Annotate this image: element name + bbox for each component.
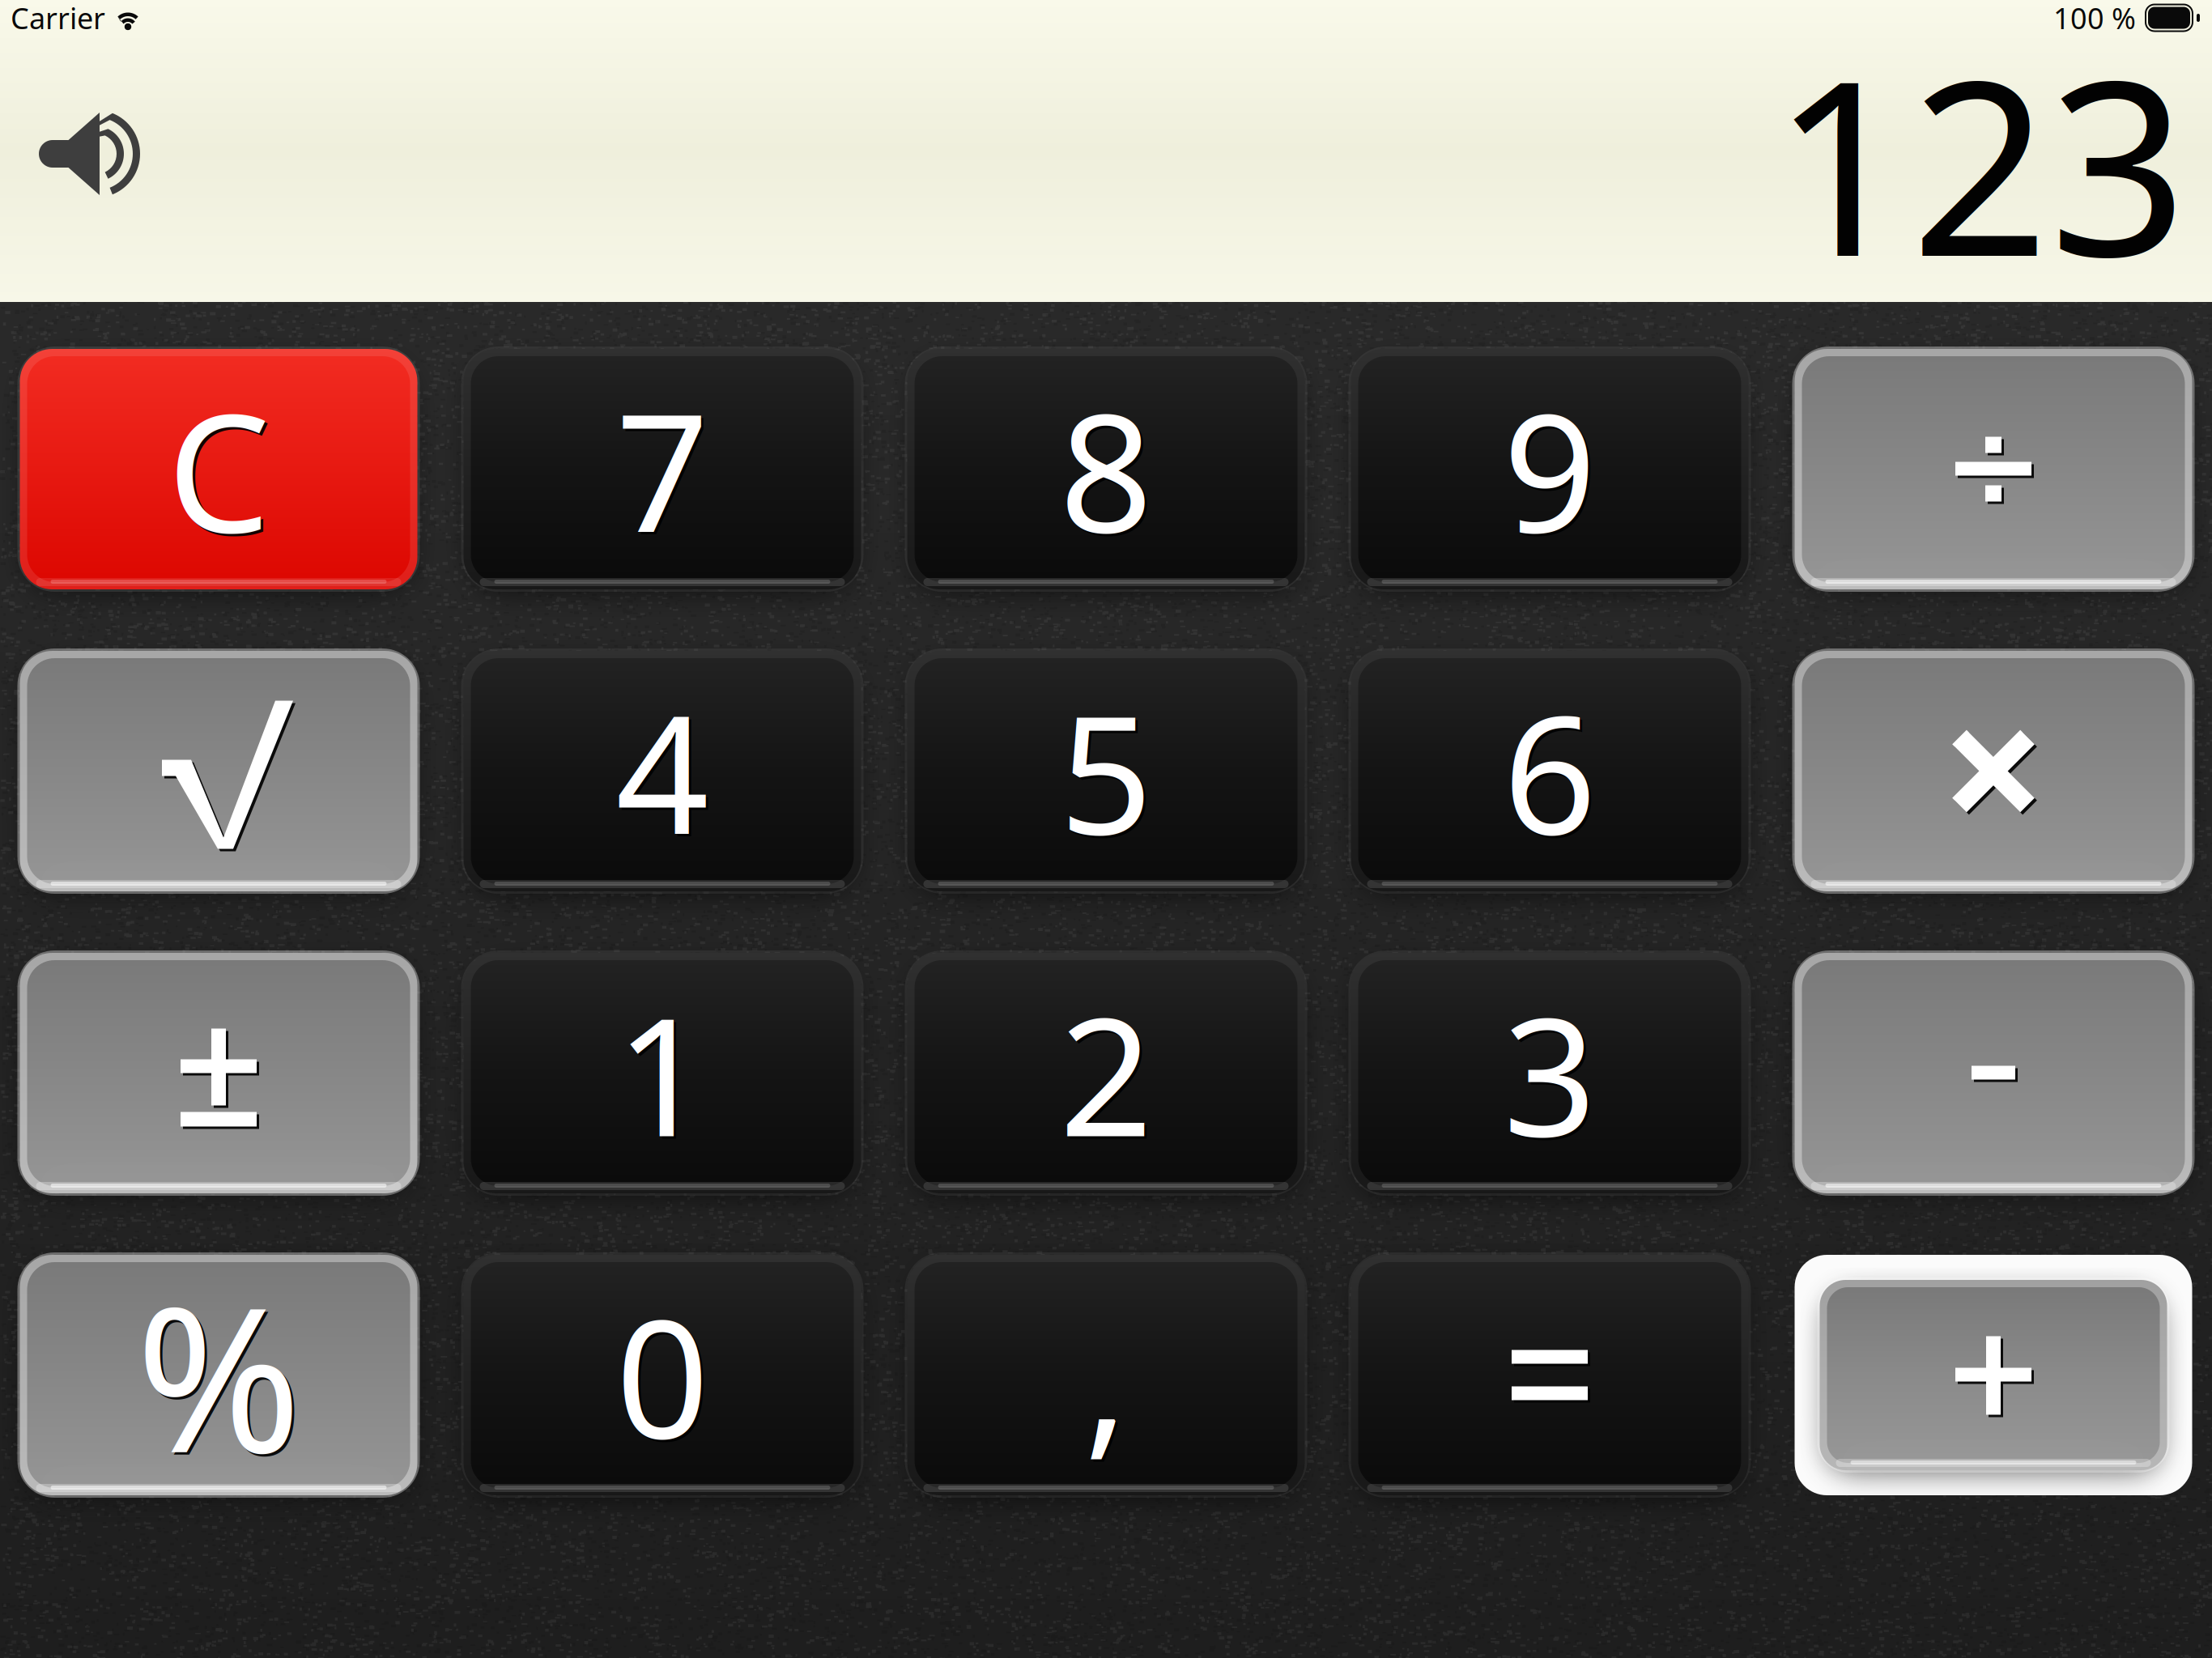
button[interactable]: %	[20, 1255, 417, 1495]
staticText: 7	[618, 363, 711, 580]
button[interactable]: 7	[464, 349, 861, 589]
button[interactable]: Plus minus	[20, 953, 417, 1193]
button[interactable]: 6	[1351, 651, 1748, 891]
staticText: C	[167, 361, 270, 577]
staticText: 8	[1062, 363, 1155, 580]
staticText: 5	[1062, 665, 1155, 882]
staticText: 9	[1503, 361, 1596, 577]
staticText: 8	[1059, 361, 1153, 577]
staticText: 5	[1059, 663, 1153, 879]
staticText: 1	[616, 965, 709, 1181]
button[interactable]: C	[20, 349, 417, 589]
button[interactable]: 2	[907, 953, 1305, 1193]
button[interactable]: ,	[907, 1255, 1305, 1495]
staticText: ,	[1084, 1267, 1128, 1483]
staticText: Carrier	[11, 0, 105, 37]
staticText: 2	[1059, 965, 1153, 1181]
staticText: %	[136, 1242, 302, 1508]
staticText: 9	[1506, 363, 1599, 580]
button[interactable]: 1	[464, 953, 861, 1193]
button[interactable]: Equals	[1351, 1255, 1748, 1495]
staticText: 0	[616, 1267, 709, 1483]
staticText: 4	[616, 663, 709, 879]
staticText: 2	[1062, 967, 1155, 1184]
button[interactable]: Minus	[1795, 953, 2192, 1193]
button[interactable]: Divide	[1795, 349, 2192, 589]
staticText: C	[170, 363, 272, 580]
staticText: 4	[618, 665, 711, 882]
button[interactable]: 5	[907, 651, 1305, 891]
staticText: 7	[616, 361, 709, 577]
staticText: 3	[1503, 965, 1596, 1181]
staticText: 6	[1503, 663, 1596, 879]
staticText: 3	[1506, 967, 1599, 1184]
button[interactable]: 4	[464, 651, 861, 891]
staticText: 1	[618, 967, 711, 1184]
button[interactable]: 3	[1351, 953, 1748, 1193]
button[interactable]: Plus	[1795, 1255, 2192, 1495]
button[interactable]: 8	[907, 349, 1305, 589]
button[interactable]: 0	[464, 1255, 861, 1495]
staticText: ,	[1087, 1269, 1130, 1486]
button[interactable]: 9	[1351, 349, 1748, 589]
button[interactable]: Sound	[14, 85, 168, 223]
staticText: 6	[1506, 665, 1599, 882]
staticText: %	[138, 1245, 304, 1510]
button[interactable]: Square root	[20, 651, 417, 891]
staticText: 123	[1772, 1, 2188, 322]
staticText: 100 %	[2053, 0, 2136, 37]
staticText: 0	[618, 1269, 711, 1486]
button[interactable]: Multiply	[1795, 651, 2192, 891]
